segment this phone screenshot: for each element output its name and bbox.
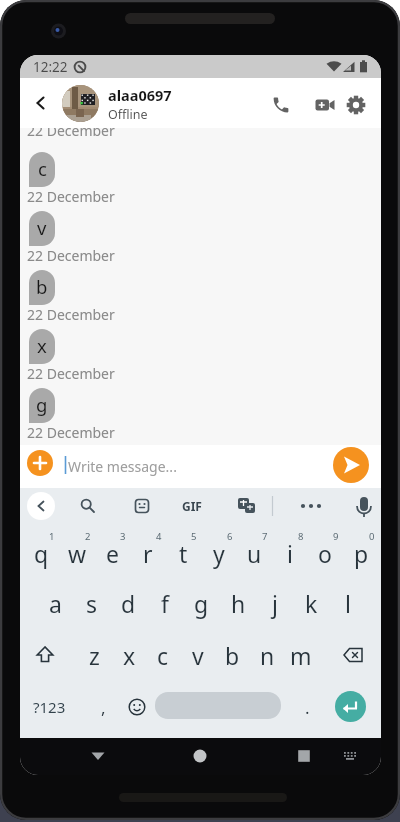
staticText: g [36, 392, 48, 417]
staticText: i [287, 538, 293, 569]
button[interactable] [292, 744, 316, 768]
button[interactable]: s [75, 586, 109, 620]
staticText: v [192, 640, 204, 671]
button[interactable]: j [258, 586, 292, 620]
staticText: s [86, 588, 98, 619]
staticText: 1 [49, 530, 55, 543]
button[interactable] [172, 493, 212, 519]
button[interactable]: . [296, 690, 318, 724]
button[interactable]: g [184, 586, 218, 620]
staticText: 12:22 [33, 58, 68, 76]
button[interactable]: k [294, 586, 328, 620]
button[interactable]: , [92, 690, 114, 724]
button[interactable]: w [60, 536, 94, 570]
button[interactable]: x [112, 638, 146, 672]
button[interactable] [62, 85, 99, 122]
button[interactable]: v [181, 638, 215, 672]
staticText: a [49, 588, 62, 619]
staticText: 8 [298, 530, 304, 543]
button[interactable] [335, 691, 366, 722]
staticText: alaa0697 [108, 85, 172, 104]
staticText: 3 [120, 530, 126, 543]
button[interactable]: q [24, 536, 58, 570]
button[interactable]: t [166, 536, 200, 570]
staticText: h [231, 588, 246, 619]
button[interactable]: d [111, 586, 145, 620]
button[interactable] [344, 93, 368, 117]
staticText: u [247, 538, 262, 569]
staticText: x [123, 640, 136, 671]
staticText: Offline [108, 106, 148, 122]
button[interactable]: n [250, 638, 284, 672]
staticText: y [213, 538, 225, 569]
button[interactable] [338, 744, 362, 768]
staticText: Write message... [68, 457, 177, 476]
button[interactable] [124, 690, 150, 724]
staticText: 4 [156, 530, 162, 543]
staticText: 22 December [27, 128, 115, 136]
staticText: f [161, 588, 169, 619]
button[interactable]: e [95, 536, 129, 570]
button[interactable]: b [215, 638, 249, 672]
button[interactable] [86, 744, 110, 768]
button[interactable] [27, 492, 55, 520]
button[interactable] [155, 692, 281, 719]
button[interactable]: a [38, 586, 72, 620]
staticText: g [194, 588, 209, 619]
button[interactable]: c [146, 638, 180, 672]
button[interactable]: p [344, 536, 378, 570]
button[interactable] [269, 93, 293, 117]
button[interactable] [28, 91, 52, 115]
button[interactable] [188, 744, 212, 768]
button[interactable]: m [284, 638, 318, 672]
button[interactable]: Write message... [68, 445, 177, 488]
staticText: 22 December [27, 305, 115, 322]
staticText: ?123 [33, 697, 66, 717]
staticText: 22 December [27, 187, 115, 204]
staticText: j [272, 588, 278, 619]
button[interactable] [75, 493, 101, 519]
button[interactable] [298, 493, 324, 519]
button[interactable] [233, 493, 259, 519]
button[interactable] [351, 492, 377, 520]
button[interactable]: i [273, 536, 307, 570]
staticText: n [260, 640, 275, 671]
staticText: GIF [182, 498, 202, 514]
staticText: l [345, 588, 351, 619]
button[interactable] [313, 93, 337, 117]
button[interactable] [333, 447, 369, 483]
button[interactable]: f [148, 586, 182, 620]
staticText: 2 [85, 530, 91, 543]
staticText: e [106, 538, 119, 569]
staticText: 0 [369, 530, 375, 543]
staticText: 9 [333, 530, 339, 543]
staticText: b [225, 640, 240, 671]
button[interactable]: u [237, 536, 271, 570]
staticText: b [36, 274, 48, 299]
button[interactable] [337, 638, 369, 672]
staticText: k [305, 588, 318, 619]
staticText: 22 December [27, 246, 115, 263]
staticText: 22 December [27, 364, 115, 381]
staticText: m [290, 640, 312, 671]
staticText: 5 [191, 530, 197, 543]
staticText: p [354, 538, 369, 569]
staticText: o [318, 538, 332, 569]
button[interactable] [129, 493, 155, 519]
button[interactable] [27, 450, 53, 476]
staticText: . [305, 696, 310, 719]
button[interactable]: h [221, 586, 255, 620]
staticText: c [38, 156, 47, 181]
button[interactable]: z [77, 638, 111, 672]
staticText: c [157, 640, 169, 671]
button[interactable]: r [131, 536, 165, 570]
button[interactable] [30, 638, 60, 672]
button[interactable]: o [308, 536, 342, 570]
staticText: w [68, 538, 87, 569]
staticText: x [37, 333, 47, 358]
button[interactable]: l [331, 586, 365, 620]
staticText: q [34, 538, 49, 569]
staticText: r [143, 538, 153, 569]
button[interactable]: ?123 [26, 690, 72, 724]
button[interactable]: y [202, 536, 236, 570]
